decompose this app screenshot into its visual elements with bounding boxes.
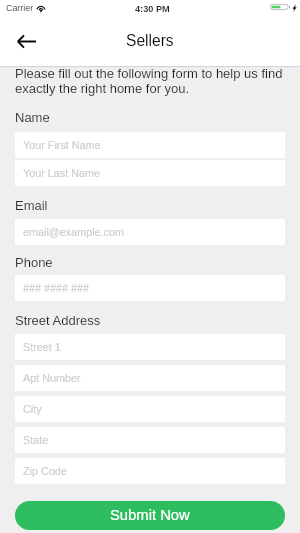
staticText: Name: [15, 110, 50, 125]
button[interactable]: City: [15, 396, 285, 422]
button[interactable]: Your First Name: [15, 132, 285, 158]
button[interactable]: email@example.com: [15, 219, 285, 245]
staticText: State: [23, 434, 49, 446]
staticText: Phone: [15, 255, 53, 270]
staticText: City: [23, 403, 42, 415]
staticText: Carrier: [6, 3, 34, 13]
staticText: 4:30 PM: [135, 4, 170, 14]
staticText: Your First Name: [23, 139, 101, 151]
button[interactable]: Your Last Name: [15, 160, 285, 186]
button[interactable]: Submit Now: [15, 501, 285, 530]
button[interactable]: State: [15, 427, 285, 453]
staticText: Apt Number: [23, 372, 81, 384]
staticText: Email: [15, 198, 48, 213]
staticText: Submit Now: [110, 507, 190, 524]
button[interactable]: Zip Code: [15, 458, 285, 484]
staticText: Street Address: [15, 313, 101, 328]
staticText: Sellers: [126, 32, 174, 49]
button[interactable]: Street 1: [15, 334, 285, 360]
staticText: Zip Code: [23, 465, 67, 477]
staticText: Your Last Name: [23, 167, 101, 179]
staticText: Street 1: [23, 341, 61, 353]
staticText: ### #### ###: [23, 282, 90, 294]
staticText: Please fill out the following form to he…: [15, 66, 287, 96]
button[interactable]: ### #### ###: [15, 275, 285, 301]
button[interactable]: Back: [9, 24, 43, 58]
staticText: email@example.com: [23, 226, 124, 238]
button[interactable]: Apt Number: [15, 365, 285, 391]
